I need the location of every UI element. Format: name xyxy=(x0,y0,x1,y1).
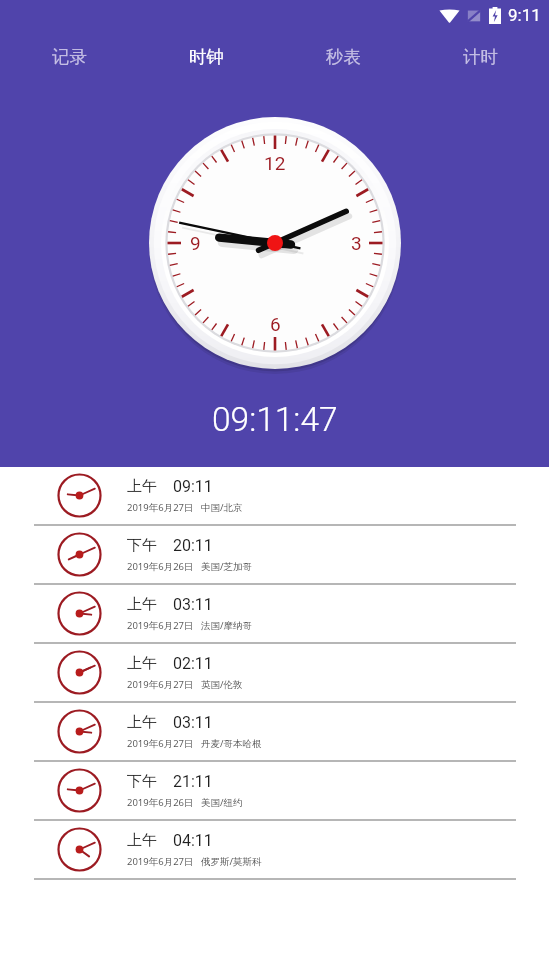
staticText: 上午 xyxy=(127,713,157,732)
button[interactable]: 时钟 xyxy=(138,31,275,83)
staticText: 21:11 xyxy=(173,772,213,791)
button[interactable]: 上午 xyxy=(0,821,549,880)
button[interactable]: 上午 xyxy=(0,644,549,703)
button[interactable]: 上午 xyxy=(0,585,549,644)
staticText: 记录 xyxy=(52,46,87,68)
staticText: 2019年6月27日 xyxy=(127,501,194,514)
staticText: 法国/摩纳哥 xyxy=(201,619,253,632)
staticText: 丹麦/哥本哈根 xyxy=(201,737,262,750)
button[interactable]: 上午 xyxy=(0,703,549,762)
button[interactable]: 下午 xyxy=(0,526,549,585)
staticText: 下午 xyxy=(127,772,157,791)
staticText: 6 xyxy=(270,313,281,335)
button[interactable]: 下午 xyxy=(0,762,549,821)
button[interactable]: 上午 xyxy=(0,467,549,526)
staticText: 20:11 xyxy=(173,536,213,555)
staticText: 2019年6月26日 xyxy=(127,796,194,809)
staticText: 英国/伦敦 xyxy=(201,678,243,691)
staticText: 09:11 xyxy=(173,477,213,496)
staticText: 计时 xyxy=(463,46,498,68)
staticText: 2019年6月26日 xyxy=(127,560,194,573)
staticText: 2019年6月27日 xyxy=(127,678,194,691)
staticText: 美国/纽约 xyxy=(201,796,243,809)
button[interactable]: 秒表 xyxy=(275,31,412,83)
staticText: 俄罗斯/莫斯科 xyxy=(201,855,262,868)
staticText: 下午 xyxy=(127,536,157,555)
staticText: 12 xyxy=(264,152,286,174)
staticText: 03:11 xyxy=(173,713,213,732)
staticText: 上午 xyxy=(127,654,157,673)
staticText: 9:11 xyxy=(508,5,541,25)
staticText: 中国/北京 xyxy=(201,501,243,514)
staticText: 时钟 xyxy=(189,46,224,68)
staticText: 02:11 xyxy=(173,654,213,673)
staticText: 09:11:47 xyxy=(212,400,338,439)
staticText: 03:11 xyxy=(173,595,213,614)
staticText: 上午 xyxy=(127,595,157,614)
staticText: 上午 xyxy=(127,831,157,850)
staticText: 2019年6月27日 xyxy=(127,737,194,750)
staticText: 上午 xyxy=(127,477,157,496)
staticText: 2019年6月27日 xyxy=(127,855,194,868)
button[interactable]: 记录 xyxy=(0,31,138,83)
staticText: 秒表 xyxy=(326,46,361,68)
staticText: 美国/芝加哥 xyxy=(201,560,253,573)
staticText: 04:11 xyxy=(173,831,213,850)
staticText: 2019年6月27日 xyxy=(127,619,194,632)
staticText: 9 xyxy=(190,232,201,254)
button[interactable]: 计时 xyxy=(412,31,549,83)
staticText: 3 xyxy=(351,232,362,254)
